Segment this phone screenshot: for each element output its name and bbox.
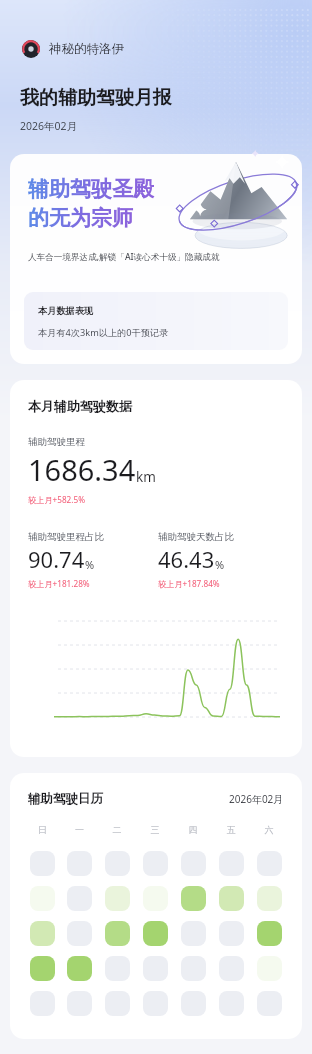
button[interactable] — [181, 851, 206, 876]
button[interactable]: 本月辅助驾驶数据 — [10, 380, 302, 757]
staticText: 辅助驾驶日历 — [28, 791, 103, 807]
button[interactable] — [143, 851, 168, 876]
button[interactable] — [181, 991, 206, 1016]
button[interactable]: 辅助驾驶圣殿 — [10, 154, 302, 364]
staticText: 的无为宗师 — [28, 205, 133, 231]
staticText: 辅助驾驶里程 — [28, 436, 85, 448]
staticText: 本月有4次3km以上的0干预记录 — [38, 326, 169, 339]
button[interactable] — [219, 991, 244, 1016]
button[interactable] — [105, 956, 130, 981]
staticText: 五 — [212, 824, 250, 835]
button[interactable] — [30, 886, 55, 911]
button[interactable] — [105, 851, 130, 876]
button[interactable] — [67, 851, 92, 876]
button[interactable] — [105, 991, 130, 1016]
button[interactable] — [257, 886, 282, 911]
staticText: % — [215, 557, 225, 572]
staticText: 本月数据表现 — [38, 305, 94, 317]
staticText: 2026年02月 — [229, 792, 284, 806]
button[interactable] — [257, 991, 282, 1016]
button[interactable] — [30, 921, 55, 946]
button[interactable] — [219, 921, 244, 946]
staticText: 四 — [174, 824, 212, 835]
staticText: 较上月+582.5% — [28, 494, 85, 505]
button[interactable] — [67, 886, 92, 911]
staticText: 辅助驾驶天数占比 — [158, 531, 234, 543]
button[interactable] — [257, 956, 282, 981]
button[interactable] — [67, 956, 92, 981]
staticText: 日 — [24, 824, 61, 835]
button[interactable] — [219, 886, 244, 911]
button[interactable] — [219, 851, 244, 876]
staticText: 六 — [250, 824, 288, 835]
button[interactable] — [219, 956, 244, 981]
button[interactable] — [181, 956, 206, 981]
button[interactable] — [143, 886, 168, 911]
button[interactable] — [67, 921, 92, 946]
staticText: 三 — [136, 824, 174, 835]
staticText: 90.74 — [28, 544, 85, 574]
button[interactable] — [181, 886, 206, 911]
staticText: 46.43 — [158, 544, 215, 574]
button[interactable] — [143, 921, 168, 946]
button[interactable] — [143, 991, 168, 1016]
staticText: 二 — [98, 824, 136, 835]
staticText: 神秘的特洛伊 — [49, 41, 124, 57]
button[interactable]: 本月数据表现 — [24, 292, 288, 350]
staticText: 1686.34 — [28, 450, 136, 489]
staticText: 本月辅助驾驶数据 — [28, 398, 132, 414]
staticText: 2026年02月 — [20, 119, 78, 133]
button[interactable] — [257, 851, 282, 876]
button[interactable] — [30, 851, 55, 876]
button[interactable] — [30, 991, 55, 1016]
staticText: km — [136, 468, 156, 486]
staticText: 较上月+187.84% — [158, 578, 220, 589]
button[interactable] — [257, 921, 282, 946]
staticText: 我的辅助驾驶月报 — [20, 86, 172, 110]
staticText: 一 — [61, 824, 98, 835]
staticText: 辅助驾驶里程占比 — [28, 531, 104, 543]
staticText: 辅助驾驶圣殿 — [28, 176, 154, 202]
button[interactable] — [67, 991, 92, 1016]
button[interactable]: 辅助驾驶日历 — [10, 773, 302, 1039]
button[interactable] — [30, 956, 55, 981]
button[interactable] — [105, 886, 130, 911]
staticText: % — [85, 557, 95, 572]
staticText: 人车合一境界达成,解锁「AI读心术十级」隐藏成就 — [28, 251, 220, 263]
button[interactable] — [105, 921, 130, 946]
button[interactable]: 神秘的特洛伊 — [20, 38, 126, 60]
button[interactable] — [143, 956, 168, 981]
staticText: 较上月+181.28% — [28, 578, 90, 589]
button[interactable] — [181, 921, 206, 946]
